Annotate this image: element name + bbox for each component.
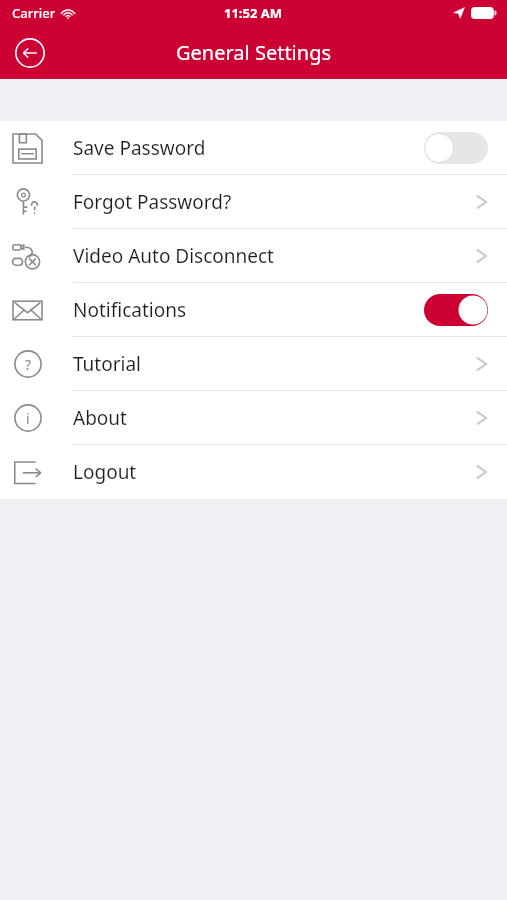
staticText: Notifications	[73, 297, 187, 323]
staticText: 11:52 AM	[224, 4, 283, 22]
staticText: Forgot Password?	[73, 189, 232, 215]
staticText: i	[26, 409, 30, 428]
staticText: Carrier	[12, 4, 56, 22]
staticText: Tutorial	[73, 351, 142, 377]
button[interactable]: ?	[0, 337, 507, 391]
button[interactable]: Logout	[0, 445, 507, 499]
button[interactable]: Back	[10, 33, 50, 73]
staticText: Save Password	[73, 135, 206, 161]
button[interactable]: Forgot Password?	[0, 175, 507, 229]
button[interactable]: Toggle off	[424, 132, 488, 164]
button[interactable]: Save Password	[0, 121, 507, 175]
staticText: ?	[25, 355, 32, 374]
button[interactable]: i	[0, 391, 507, 445]
staticText: Logout	[73, 459, 137, 485]
button[interactable]: Video Auto Disconnect	[0, 229, 507, 283]
button[interactable]: Notifications	[0, 283, 507, 337]
button[interactable]: Toggle on	[424, 294, 488, 326]
staticText: About	[73, 405, 127, 431]
staticText: General Settings	[176, 39, 332, 66]
staticText: Video Auto Disconnect	[73, 243, 274, 269]
